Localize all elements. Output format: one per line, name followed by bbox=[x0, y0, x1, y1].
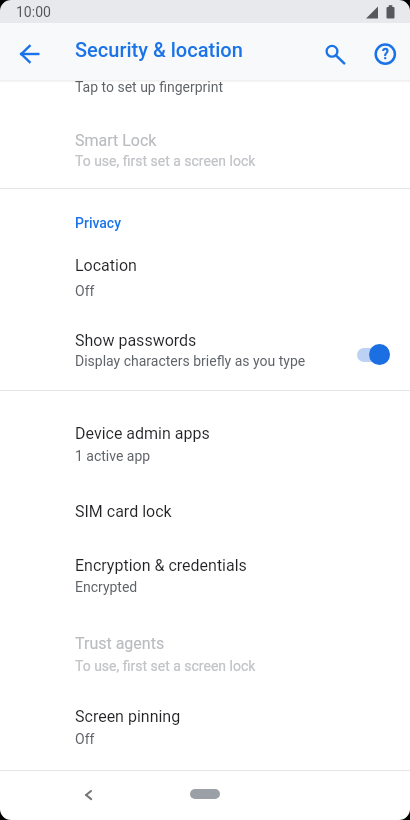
staticText: Encryption & credentials bbox=[75, 556, 247, 575]
button[interactable]: Show passwords bbox=[0, 325, 410, 391]
button[interactable] bbox=[190, 789, 220, 799]
staticText: Off bbox=[75, 731, 95, 747]
staticText: To use, first set a screen lock bbox=[75, 153, 256, 169]
staticText: Security & location bbox=[75, 38, 243, 61]
button[interactable] bbox=[14, 38, 46, 70]
staticText: 10:00 bbox=[16, 4, 51, 20]
button[interactable]: Screen pinning bbox=[0, 699, 410, 771]
staticText: Screen pinning bbox=[75, 707, 181, 726]
button[interactable]: Trust agents bbox=[0, 623, 410, 699]
button[interactable]: Location bbox=[0, 249, 410, 325]
button[interactable] bbox=[318, 38, 350, 70]
staticText: Tap to set up fingerprint bbox=[75, 79, 224, 95]
staticText: Trust agents bbox=[75, 634, 165, 653]
staticText: Device admin apps bbox=[75, 424, 210, 443]
staticText: To use, first set a screen lock bbox=[75, 658, 256, 674]
button[interactable]: Smart Lock bbox=[0, 117, 410, 189]
staticText: Show passwords bbox=[75, 331, 197, 350]
staticText: Smart Lock bbox=[75, 131, 157, 150]
staticText: SIM card lock bbox=[75, 502, 172, 521]
button[interactable]: Tap to set up fingerprint bbox=[0, 30, 410, 117]
staticText: Encrypted bbox=[75, 579, 138, 595]
button[interactable]: ? bbox=[369, 38, 401, 70]
staticText: Display characters briefly as you type bbox=[75, 353, 306, 369]
button[interactable] bbox=[73, 779, 105, 811]
staticText: Privacy bbox=[75, 215, 122, 231]
staticText: 1 active app bbox=[75, 448, 151, 464]
staticText: Off bbox=[75, 283, 95, 299]
button[interactable]: Device admin apps bbox=[0, 417, 410, 493]
button[interactable]: Encryption & credentials bbox=[0, 547, 410, 623]
button[interactable]: SIM card lock bbox=[0, 493, 410, 547]
staticText: Location bbox=[75, 256, 137, 275]
staticText: ? bbox=[382, 46, 389, 62]
